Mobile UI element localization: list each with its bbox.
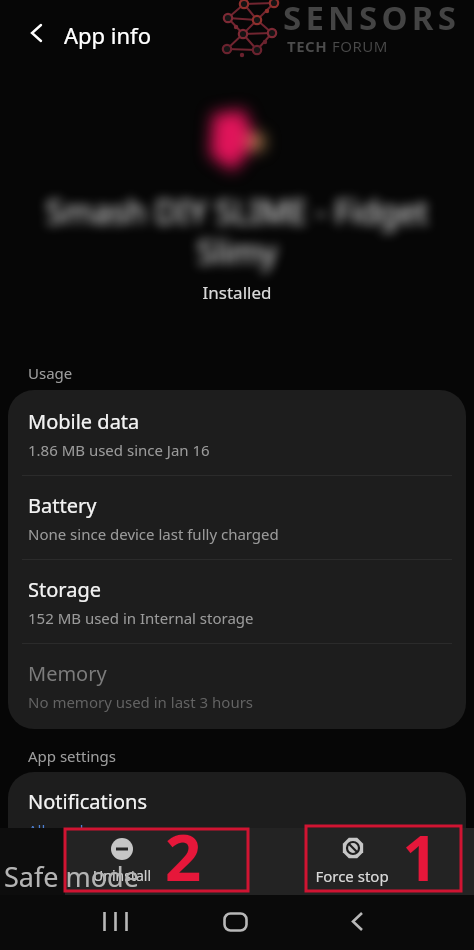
button[interactable]: Storage bbox=[8, 560, 466, 643]
staticText: 2 bbox=[153, 813, 213, 900]
button[interactable]: App info bbox=[0, 0, 220, 66]
staticText: TECH bbox=[287, 36, 332, 56]
staticText: FORUM bbox=[332, 36, 388, 56]
button[interactable]: Force stop bbox=[287, 830, 417, 892]
staticText: Force stop bbox=[287, 866, 417, 886]
staticText: Usage bbox=[28, 363, 228, 383]
staticText: 152 MB used in Internal storage bbox=[28, 608, 254, 628]
button[interactable]: Notifications bbox=[8, 772, 466, 950]
staticText: Safe mode bbox=[4, 858, 224, 895]
button[interactable]: Memory bbox=[8, 644, 466, 727]
staticText: 1.86 MB used since Jan 16 bbox=[28, 440, 210, 460]
staticText: Allowed bbox=[28, 820, 84, 840]
button[interactable]: Uninstall bbox=[57, 830, 187, 892]
staticText: Uninstall bbox=[57, 866, 187, 885]
staticText: 1 bbox=[395, 815, 445, 899]
staticText: SENSORS bbox=[283, 0, 474, 40]
staticText: Storage bbox=[28, 576, 101, 603]
staticText: Installed bbox=[0, 281, 474, 304]
button[interactable] bbox=[223, 912, 249, 932]
staticText: App settings bbox=[28, 746, 228, 766]
staticText: Smash DIY SLIME - Fidget Slimy bbox=[0, 190, 474, 273]
button[interactable]: Battery bbox=[8, 476, 466, 559]
button[interactable]: Mobile data bbox=[8, 392, 466, 475]
staticText: Notifications bbox=[28, 788, 147, 815]
staticText: Mobile data bbox=[28, 408, 140, 435]
staticText: App info bbox=[64, 20, 214, 50]
staticText: None since device last fully charged bbox=[28, 524, 279, 544]
button[interactable] bbox=[348, 912, 368, 932]
staticText: No memory used in last 3 hours bbox=[28, 692, 254, 712]
button[interactable] bbox=[102, 912, 130, 932]
staticText: Battery bbox=[28, 492, 97, 519]
staticText: Memory bbox=[28, 660, 107, 687]
